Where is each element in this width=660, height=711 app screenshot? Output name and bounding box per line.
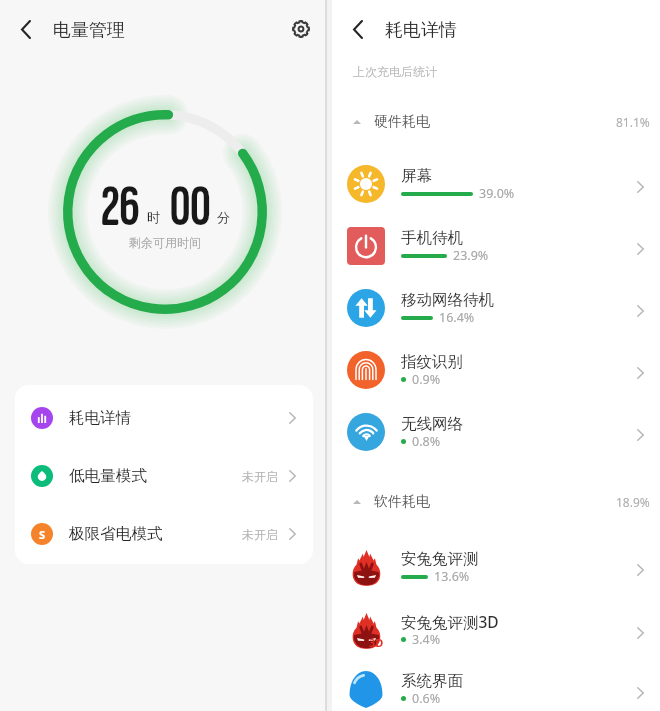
staticText: 0.8% [412, 433, 441, 450]
staticText: 0.9% [412, 371, 441, 388]
button[interactable]: 屏幕 [332, 156, 660, 218]
button[interactable]: 硬件耗电 [332, 107, 660, 137]
button[interactable]: S [15, 505, 313, 563]
staticText: 系统界面 [401, 671, 463, 691]
staticText: 未开启 [242, 469, 278, 484]
staticText: 耗电详情 [385, 19, 457, 42]
staticText: 硬件耗电 [374, 113, 430, 131]
staticText: 安兔兔评测3D [401, 611, 499, 632]
staticText: 安兔兔评测 [401, 549, 479, 569]
button[interactable]: Settings [285, 13, 317, 45]
staticText: 移动网络待机 [401, 290, 494, 310]
staticText: 极限省电模式 [69, 524, 163, 544]
staticText: 23.9% [453, 247, 489, 264]
button[interactable]: 无线网络 [332, 404, 660, 466]
button[interactable]: 系统界面 [332, 674, 660, 711]
staticText: 分 [217, 209, 230, 225]
button[interactable]: Back [341, 12, 375, 46]
staticText: 电量管理 [53, 19, 125, 42]
staticText: 81.1% [616, 114, 650, 130]
staticText: 26 [101, 174, 140, 241]
staticText: 手机待机 [401, 228, 463, 248]
staticText: 39.0% [479, 185, 515, 202]
button[interactable]: 软件耗电 [332, 487, 660, 517]
staticText: 屏幕 [401, 166, 432, 186]
staticText: 时 [147, 209, 160, 225]
button[interactable]: 3D [332, 602, 660, 664]
staticText: 18.9% [616, 494, 650, 510]
staticText: 软件耗电 [374, 493, 430, 511]
staticText: 无线网络 [401, 414, 463, 434]
staticText: 16.4% [439, 309, 475, 326]
staticText: 耗电详情 [69, 408, 132, 428]
button[interactable]: 安兔兔评测 [332, 539, 660, 601]
button[interactable]: Back [9, 12, 43, 46]
button[interactable]: 耗电详情 [15, 389, 313, 447]
staticText: 3D [369, 635, 384, 650]
staticText: 上次充电后统计 [353, 64, 437, 79]
staticText: 未开启 [242, 527, 278, 542]
staticText: 剩余可用时间 [129, 235, 201, 250]
staticText: S [39, 527, 46, 542]
button[interactable]: 指纹识别 [332, 342, 660, 404]
staticText: 13.6% [434, 568, 470, 585]
button[interactable]: 手机待机 [332, 218, 660, 280]
staticText: 指纹识别 [401, 352, 463, 372]
staticText: 0.6% [412, 690, 441, 707]
staticText: 3.4% [412, 631, 441, 648]
staticText: 低电量模式 [69, 466, 147, 486]
staticText: 00 [170, 174, 211, 241]
button[interactable]: 低电量模式 [15, 447, 313, 505]
button[interactable]: 移动网络待机 [332, 280, 660, 342]
